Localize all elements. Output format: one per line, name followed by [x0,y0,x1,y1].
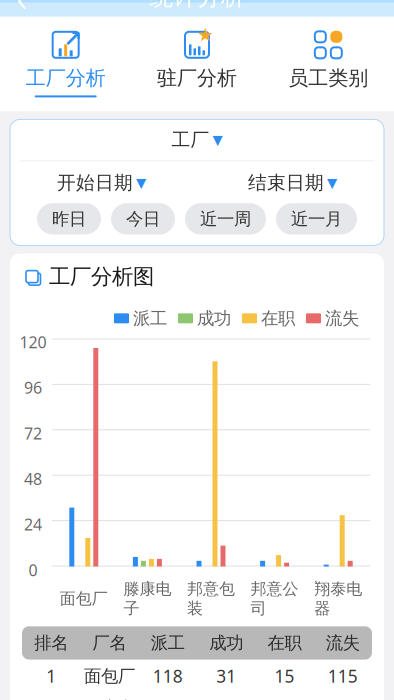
staticText: 15 [274,665,294,688]
staticText: 0 [28,559,37,581]
staticText: 115 [328,665,358,688]
staticText: 统计分析 [149,0,245,12]
staticText: 面包厂 [60,589,108,608]
button[interactable]: 今日 [111,203,175,234]
staticText: 滕康电子 [123,579,171,618]
staticText: 工厂分析图 [49,263,154,290]
staticText: 滕康电子 [84,698,135,700]
staticText: 成功 [197,308,231,329]
staticText: 邦意包装 [187,579,235,618]
staticText: 近一月 [291,208,342,229]
button[interactable]: 近一月 [276,203,357,234]
button[interactable]: 开始日期 [57,171,146,194]
staticText: 24 [24,514,42,535]
button[interactable]: 返回 [0,0,44,17]
button[interactable]: 昨日 [37,203,101,234]
staticText: 面包厂 [84,665,135,687]
staticText: 邦意公司 [251,579,299,618]
staticText: 昨日 [52,208,86,229]
staticText: 近一周 [200,208,251,229]
staticText: 118 [153,665,183,688]
staticText: 今日 [126,208,160,229]
button[interactable]: ★ [131,23,263,103]
staticText: 翔泰电器 [314,579,362,618]
button[interactable]: 近一周 [185,203,266,234]
button[interactable]: ↗ [0,23,131,103]
staticText: ▼ [327,175,337,190]
staticText: 流失 [325,308,359,329]
staticText: 驻厂分析 [157,66,237,90]
staticText: 在职 [261,308,295,329]
staticText: 72 [24,423,42,444]
staticText: 120 [19,331,46,353]
staticText: 流失 [326,632,360,654]
staticText: ↗ [63,26,82,52]
staticText: 开始日期 [57,171,133,194]
staticText: ▼ [136,175,146,190]
staticText: 31 [216,665,236,688]
staticText: 派工 [151,632,185,654]
button[interactable]: 结束日期 [248,171,337,194]
button[interactable]: 工厂 [171,128,222,151]
staticText: 工厂分析 [26,66,106,90]
staticText: 1 [46,665,56,688]
staticText: 成功 [209,632,243,654]
staticText: 派工 [133,308,167,329]
staticText: ▼ [212,132,222,147]
staticText: 排名 [34,632,68,654]
staticText: ‹ [16,0,27,23]
button[interactable]: 员工类别 [263,23,394,103]
staticText: 厂名 [92,632,126,654]
staticText: 48 [24,468,42,489]
staticText: ★ [197,24,214,45]
staticText: 工厂 [171,128,209,151]
staticText: 在职 [267,632,301,654]
staticText: 96 [24,377,42,398]
staticText: 员工类别 [288,66,368,90]
staticText: 结束日期 [248,171,324,194]
